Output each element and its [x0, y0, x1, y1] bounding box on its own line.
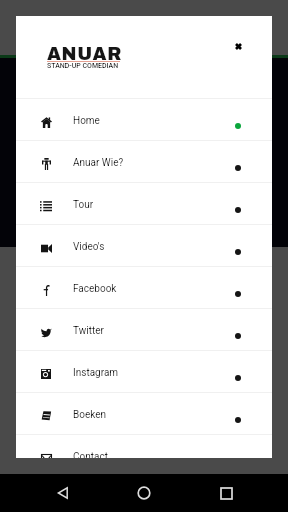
button[interactable]: Boeken: [16, 393, 272, 435]
staticText: Twitter: [73, 325, 104, 337]
staticText: Video's: [73, 241, 105, 253]
button[interactable]: Recent apps: [207, 474, 245, 512]
staticText: Anuar Wie?: [73, 157, 124, 169]
staticText: Facebook: [73, 283, 117, 295]
button[interactable]: Anuar Wie?: [16, 141, 272, 183]
button[interactable]: Home: [16, 99, 272, 141]
button[interactable]: Video's: [16, 225, 272, 267]
staticText: Instagram: [73, 367, 119, 379]
button[interactable]: Contact: [16, 435, 272, 458]
button[interactable]: Home: [125, 474, 163, 512]
staticText: Contact: [73, 451, 108, 458]
staticText: Boeken: [73, 409, 107, 421]
button[interactable]: Facebook: [16, 267, 272, 309]
button[interactable]: Tour: [16, 183, 272, 225]
button[interactable]: Back: [44, 474, 82, 512]
staticText: Tour: [73, 199, 94, 211]
staticText: Home: [73, 115, 100, 127]
button[interactable]: Twitter: [16, 309, 272, 351]
button[interactable]: Instagram: [16, 351, 272, 393]
button[interactable]: Close menu: [226, 34, 250, 58]
staticText: ANUAR: [47, 44, 122, 64]
staticText: STAND-UP COMEDIAN: [47, 62, 119, 70]
